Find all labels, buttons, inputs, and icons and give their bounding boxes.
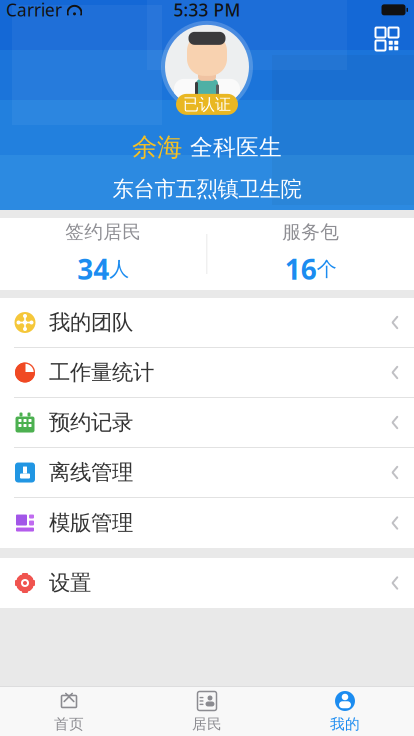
staticText: 离线管理 bbox=[49, 459, 133, 486]
staticText: Carrier bbox=[6, 0, 62, 21]
staticText: 东台市五烈镇卫生院 bbox=[112, 176, 301, 202]
staticText: 5:33 PM bbox=[173, 0, 240, 21]
button[interactable]: 设置 bbox=[0, 558, 414, 608]
staticText: 工作量统计 bbox=[49, 359, 154, 386]
button[interactable]: 扫一扫二维码 bbox=[370, 22, 404, 56]
staticText: 我的 bbox=[330, 715, 360, 733]
staticText: 全科医生 bbox=[190, 133, 282, 161]
staticText: 34 bbox=[77, 250, 109, 288]
staticText: 服务包 bbox=[282, 220, 339, 243]
button[interactable]: 工作量统计 bbox=[0, 348, 414, 398]
staticText: 个 bbox=[317, 257, 337, 281]
button[interactable]: 服务包 bbox=[207, 218, 414, 290]
button[interactable]: 签约居民 bbox=[0, 218, 206, 290]
staticText: 我的团队 bbox=[49, 309, 133, 336]
button[interactable]: 预约记录 bbox=[0, 398, 414, 448]
button[interactable]: 我的团队 bbox=[0, 298, 414, 348]
staticText: 首页 bbox=[54, 715, 84, 733]
button[interactable]: 首页 bbox=[0, 687, 138, 736]
staticText: 居民 bbox=[192, 715, 222, 733]
staticText: 签约居民 bbox=[65, 220, 141, 243]
staticText: 设置 bbox=[49, 570, 91, 596]
staticText: 余海 bbox=[132, 132, 182, 163]
staticText: 预约记录 bbox=[49, 409, 133, 436]
staticText: 已认证 bbox=[183, 94, 231, 114]
button[interactable]: 模版管理 bbox=[0, 498, 414, 548]
button[interactable]: 我的 bbox=[276, 687, 414, 736]
staticText: 16 bbox=[285, 250, 317, 288]
button[interactable]: 离线管理 bbox=[0, 448, 414, 498]
staticText: 人 bbox=[109, 257, 129, 281]
button[interactable]: 居民 bbox=[138, 687, 276, 736]
staticText: 模版管理 bbox=[49, 510, 133, 536]
